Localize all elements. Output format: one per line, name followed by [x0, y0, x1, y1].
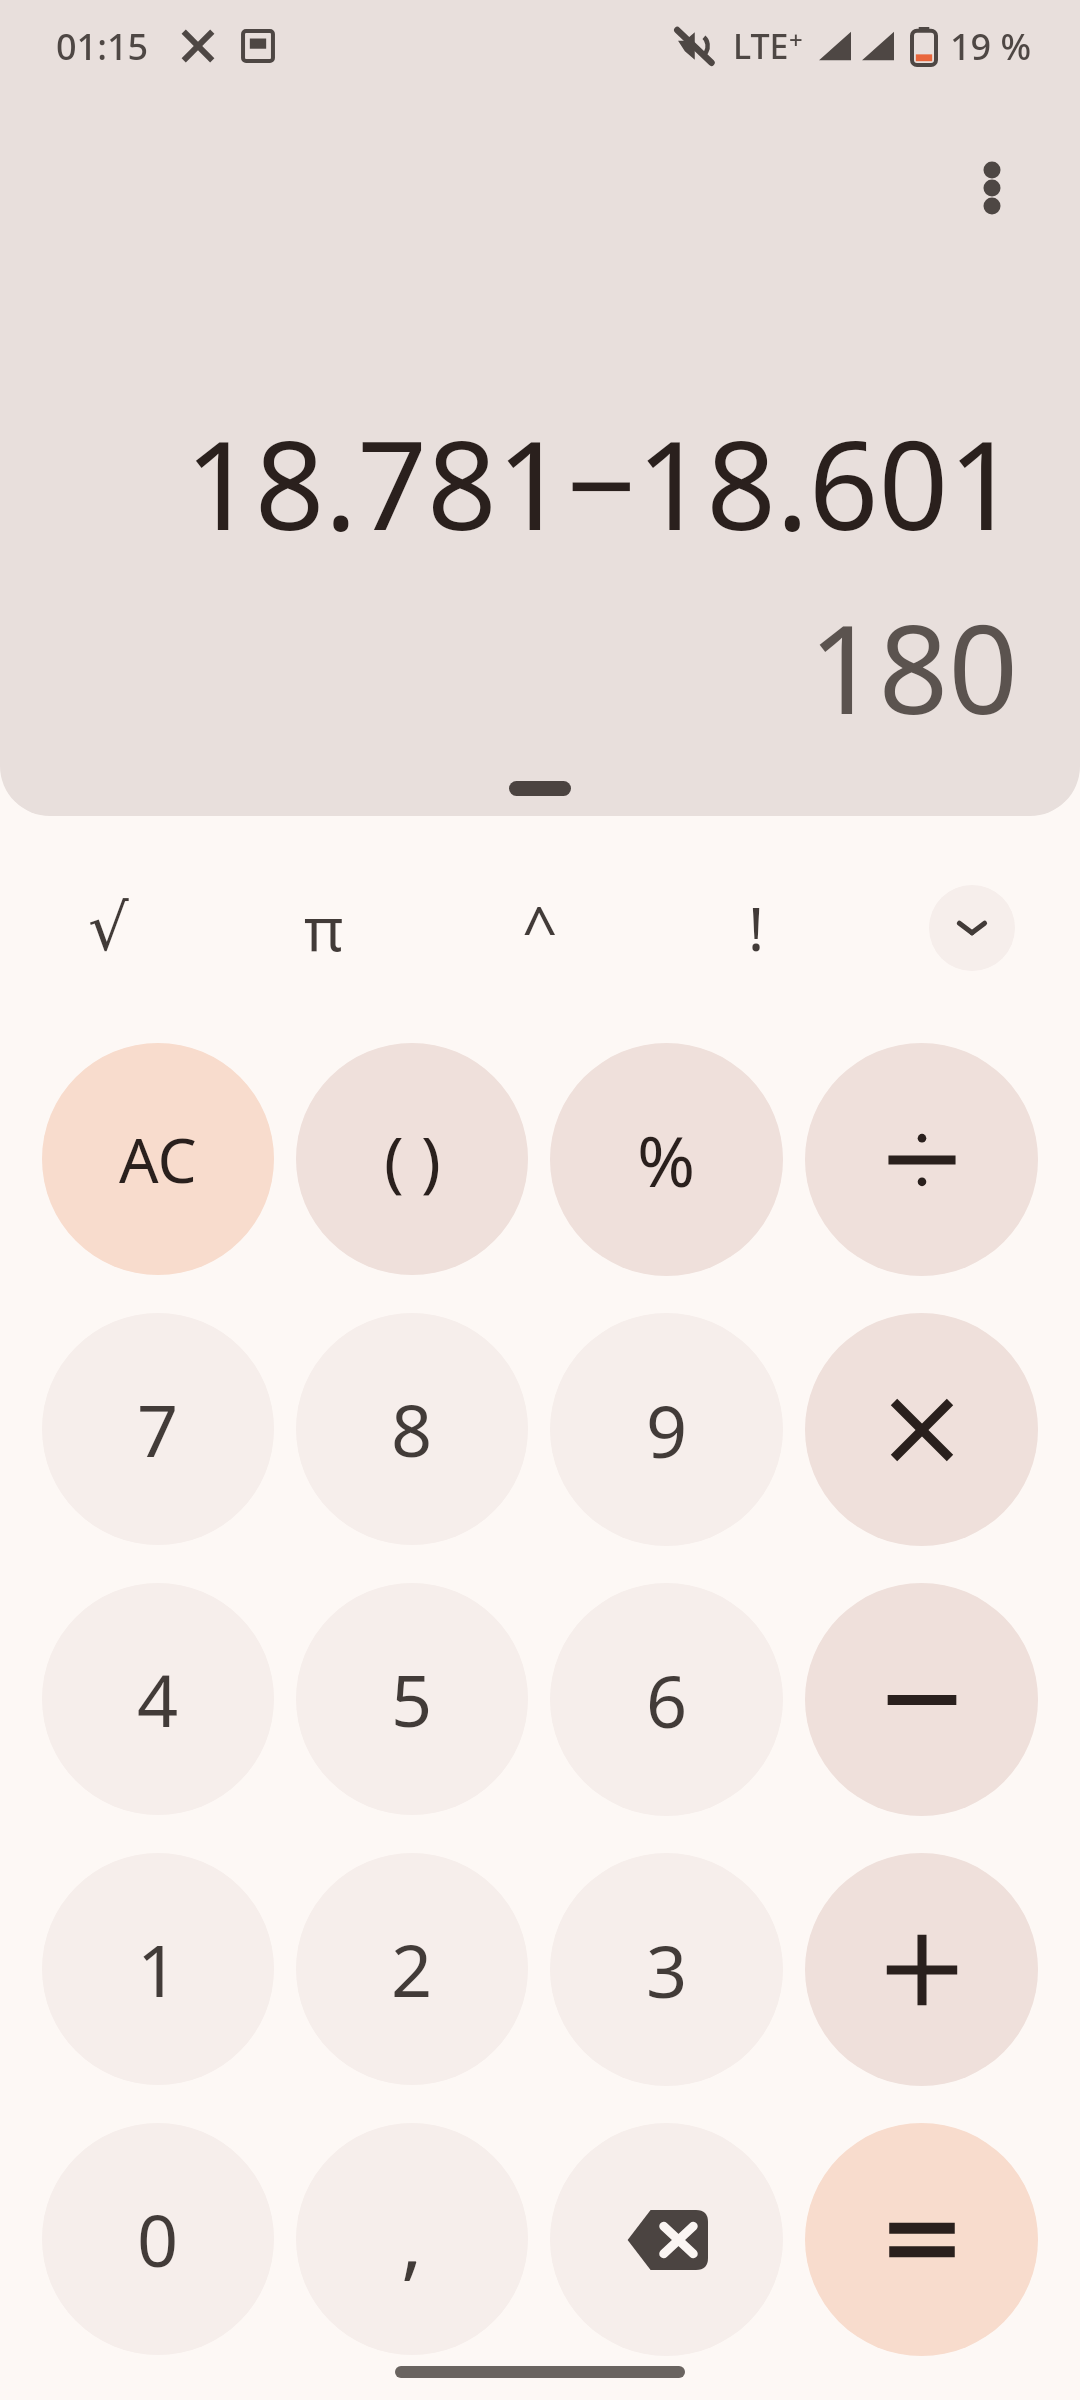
button[interactable]: More options — [932, 128, 1052, 248]
button[interactable]: Collapse functions — [929, 885, 1015, 971]
staticText: + — [789, 23, 803, 56]
button[interactable]: 3 — [550, 1853, 783, 2086]
staticText: π — [304, 887, 344, 969]
staticText: 01:15 — [56, 22, 149, 71]
button[interactable]: ! — [648, 862, 864, 994]
staticText: AC — [119, 1117, 197, 1201]
button[interactable]: 0 — [42, 2123, 274, 2355]
button[interactable]: Backspace — [550, 2123, 783, 2356]
staticText: 7 — [137, 1380, 179, 1478]
staticText: √ — [88, 891, 129, 966]
button[interactable]: Minus — [805, 1583, 1038, 1816]
staticText: 0 — [137, 2190, 179, 2288]
button[interactable]: 2 — [296, 1853, 528, 2085]
staticText: 2 — [391, 1920, 433, 2018]
button[interactable]: 5 — [296, 1583, 528, 1815]
button[interactable]: AC — [42, 1043, 274, 1275]
staticText: ! — [748, 887, 765, 969]
button[interactable]: 8 — [296, 1313, 528, 1545]
button[interactable]: ( ) — [296, 1043, 528, 1275]
button[interactable]: Plus — [805, 1853, 1038, 2086]
staticText: 1 — [137, 1920, 179, 2018]
staticText: ^ — [522, 886, 558, 970]
staticText: 4 — [137, 1650, 179, 1748]
button[interactable]: Multiply — [805, 1313, 1038, 1546]
button[interactable]: Divide — [805, 1043, 1038, 1276]
staticText: 19 % — [950, 22, 1032, 71]
button[interactable]: , — [296, 2123, 528, 2355]
staticText: 5 — [391, 1650, 433, 1748]
staticText: 6 — [646, 1651, 688, 1749]
staticText: 3 — [646, 1921, 688, 2019]
button[interactable]: 9 — [550, 1313, 783, 1546]
button[interactable]: π — [216, 862, 432, 994]
staticText: 18.781−18.601 — [60, 400, 1018, 566]
button[interactable]: Equals — [805, 2123, 1038, 2356]
staticText: 9 — [646, 1381, 688, 1479]
staticText: , — [401, 2185, 423, 2294]
button[interactable]: 7 — [42, 1313, 274, 1545]
staticText: LTE — [733, 23, 789, 69]
button[interactable]: ^ — [432, 862, 648, 994]
button[interactable]: 4 — [42, 1583, 274, 1815]
button[interactable]: 1 — [42, 1853, 274, 2085]
button[interactable]: % — [550, 1043, 783, 1276]
staticText: 8 — [391, 1380, 433, 1478]
staticText: ( ) — [384, 1114, 441, 1204]
button[interactable]: √ — [0, 862, 216, 994]
staticText: 180 — [60, 584, 1018, 750]
button[interactable]: 6 — [550, 1583, 783, 1816]
staticText: % — [637, 1112, 696, 1207]
